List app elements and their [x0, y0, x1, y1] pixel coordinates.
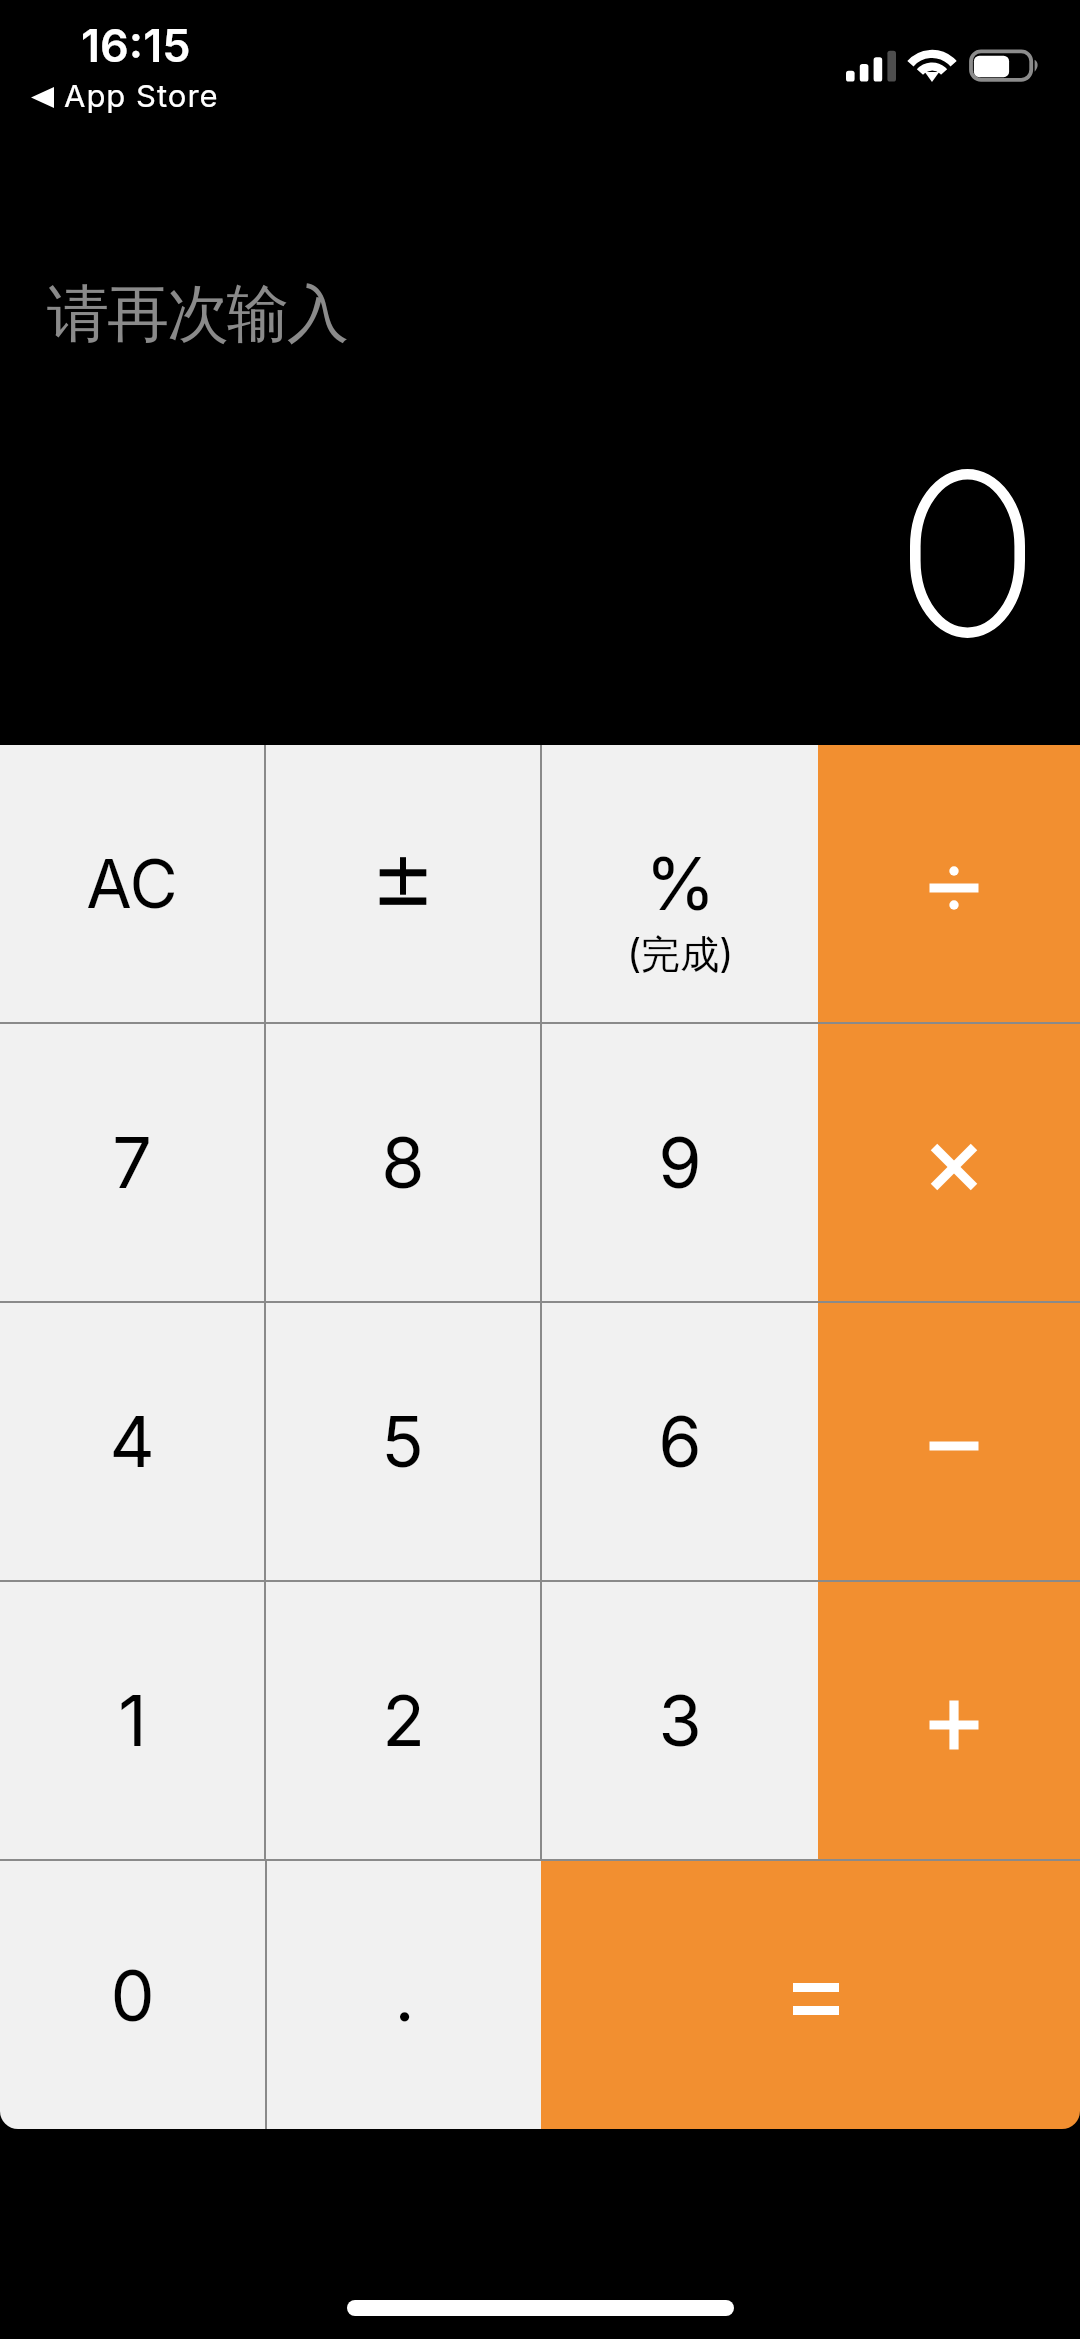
- staticText: 2: [382, 1678, 425, 1763]
- button[interactable]: Equals: [541, 1861, 1080, 2129]
- staticText: 5: [382, 1399, 424, 1484]
- button[interactable]: 0: [0, 1861, 265, 2129]
- staticText: 3: [658, 1678, 702, 1763]
- button[interactable]: Divide: [818, 745, 1080, 1022]
- staticText: 0: [110, 1953, 155, 2038]
- other: Battery: [968, 48, 1040, 84]
- button[interactable]: 9: [542, 1024, 818, 1301]
- button[interactable]: Toggle sign: [266, 745, 540, 1022]
- button[interactable]: 2: [266, 1582, 540, 1859]
- other: Wi-Fi: [910, 49, 955, 84]
- staticText: 1: [118, 1678, 147, 1763]
- staticText: %: [645, 840, 716, 927]
- button[interactable]: .: [267, 1861, 541, 2129]
- button[interactable]: 1: [0, 1582, 264, 1859]
- staticText: (完成): [627, 930, 734, 979]
- staticText: .: [394, 1953, 415, 2038]
- staticText: 请再次输入: [48, 275, 348, 353]
- button[interactable]: 5: [266, 1303, 540, 1580]
- button[interactable]: Multiply: [818, 1024, 1080, 1301]
- staticText: 6: [658, 1399, 702, 1484]
- button[interactable]: Subtract: [818, 1303, 1080, 1580]
- staticText: App Store: [64, 77, 219, 115]
- button[interactable]: 4: [0, 1303, 264, 1580]
- button[interactable]: App Store: [31, 78, 219, 116]
- button[interactable]: 7: [0, 1024, 264, 1301]
- button[interactable]: 6: [542, 1303, 818, 1580]
- staticText: 9: [658, 1120, 702, 1205]
- button[interactable]: Add: [818, 1582, 1080, 1859]
- other: Cellular signal: [846, 50, 896, 82]
- staticText: AC: [86, 844, 178, 924]
- staticText: 16:15: [81, 18, 191, 72]
- button[interactable]: AC: [0, 745, 264, 1022]
- button[interactable]: %: [542, 745, 818, 1022]
- staticText: 4: [109, 1399, 155, 1484]
- button[interactable]: 3: [542, 1582, 818, 1859]
- staticText: 8: [381, 1120, 425, 1205]
- button[interactable]: 8: [266, 1024, 540, 1301]
- staticText: 7: [112, 1120, 152, 1205]
